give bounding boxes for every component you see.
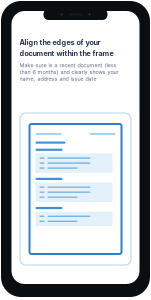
staticText: name, address and issue date xyxy=(19,76,96,82)
staticText: Make sure is a recent document (less xyxy=(19,62,116,69)
staticText: than 6 months) and clearly shows your xyxy=(19,69,118,75)
staticText: document within the frame xyxy=(19,49,113,58)
staticText: Align the edges of your xyxy=(19,38,100,47)
